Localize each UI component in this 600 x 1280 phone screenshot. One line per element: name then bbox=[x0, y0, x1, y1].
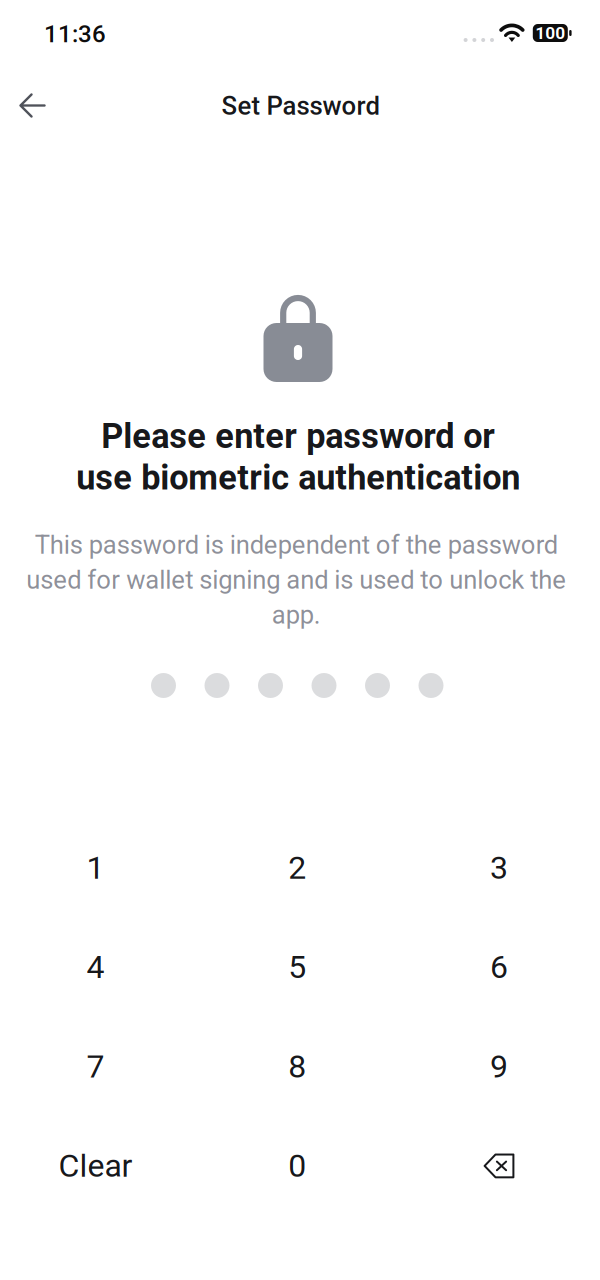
button[interactable]: Clear bbox=[0, 1116, 200, 1216]
button[interactable]: 2 bbox=[200, 818, 400, 917]
staticText: 2 bbox=[288, 849, 306, 886]
button[interactable]: 6 bbox=[400, 917, 600, 1017]
staticText: 100 bbox=[535, 23, 565, 43]
staticText: 4 bbox=[86, 948, 104, 986]
staticText: 8 bbox=[288, 1048, 306, 1085]
staticText: 11:36 bbox=[44, 20, 106, 48]
button[interactable]: 9 bbox=[400, 1017, 600, 1116]
staticText: Clear bbox=[58, 1147, 132, 1185]
button[interactable]: 0 bbox=[200, 1116, 400, 1216]
button[interactable]: 7 bbox=[0, 1017, 200, 1116]
button[interactable]: 1 bbox=[0, 818, 200, 917]
staticText: This password is independent of the pass… bbox=[26, 530, 566, 630]
button[interactable]: 4 bbox=[0, 917, 200, 1017]
button[interactable]: 8 bbox=[200, 1017, 400, 1116]
staticText: 0 bbox=[288, 1147, 306, 1185]
staticText: Set Password bbox=[221, 91, 380, 121]
button[interactable]: Delete bbox=[400, 1116, 600, 1216]
button[interactable]: Back bbox=[0, 77, 64, 133]
staticText: 6 bbox=[490, 948, 508, 986]
button[interactable]: 3 bbox=[400, 818, 600, 917]
staticText: 1 bbox=[86, 849, 104, 886]
staticText: Please enter password or use biometric a… bbox=[76, 416, 520, 498]
staticText: 3 bbox=[490, 849, 508, 886]
staticText: 5 bbox=[288, 948, 306, 986]
staticText: 7 bbox=[86, 1048, 104, 1085]
staticText: 9 bbox=[490, 1048, 508, 1085]
button[interactable]: 5 bbox=[200, 917, 400, 1017]
